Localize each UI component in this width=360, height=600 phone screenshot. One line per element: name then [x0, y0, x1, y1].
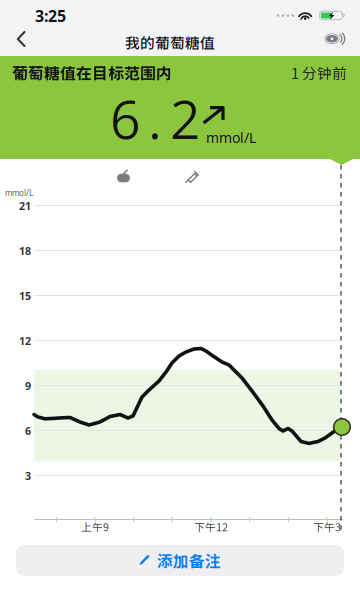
button[interactable]: 添加备注	[16, 545, 344, 576]
staticText: 3	[25, 468, 31, 483]
staticText: 6.2	[110, 82, 200, 155]
staticText: 1 分钟前	[291, 62, 347, 83]
staticText: 18	[19, 243, 31, 258]
staticText: 添加备注	[157, 549, 221, 572]
staticText: 我的葡萄糖值	[125, 31, 215, 53]
staticText: mmol/L	[5, 187, 33, 198]
staticText: 3:25	[35, 5, 66, 27]
button[interactable]: 返回	[0, 22, 41, 56]
staticText: 下午3	[313, 519, 341, 534]
staticText: 下午12	[194, 519, 228, 534]
staticText: 12	[19, 333, 31, 348]
staticText: 上午9	[81, 519, 109, 534]
staticText: 9	[25, 378, 31, 393]
staticText: 6	[25, 423, 31, 438]
staticText: 葡萄糖值在目标范围内	[12, 61, 172, 84]
staticText: 21	[19, 198, 31, 213]
button[interactable]: 扫描传感器	[307, 22, 360, 56]
staticText: 15	[19, 288, 31, 303]
staticText: mmol/L	[206, 128, 256, 147]
